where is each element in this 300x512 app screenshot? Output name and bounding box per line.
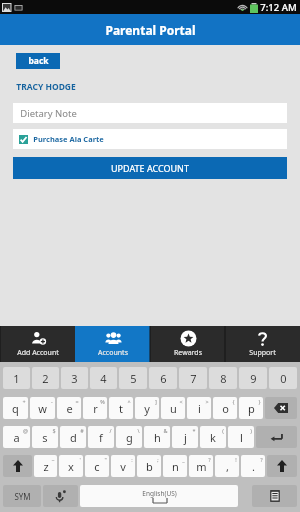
staticText: } (258, 398, 261, 405)
staticText: r (93, 401, 98, 416)
staticText: b (146, 459, 153, 474)
staticText: 1 (13, 371, 20, 386)
button[interactable]: 0 (269, 367, 297, 389)
staticText: TRACY HODGE (16, 81, 76, 93)
button[interactable]: . (241, 455, 265, 477)
button[interactable]: Backspace (265, 397, 297, 419)
button[interactable]: b (137, 455, 161, 477)
staticText: 6 (160, 371, 167, 386)
button[interactable]: y (135, 397, 159, 419)
staticText: _ (182, 456, 185, 463)
button[interactable]: t (109, 397, 133, 419)
button[interactable]: e (57, 397, 81, 419)
button[interactable]: s (32, 426, 58, 448)
staticText: y (144, 401, 150, 416)
staticText: u (170, 401, 177, 416)
button[interactable]: 9 (239, 367, 267, 389)
staticText: SYM (14, 491, 31, 502)
button[interactable]: h (144, 426, 170, 448)
staticText: 9 (250, 371, 257, 386)
staticText: # (80, 427, 84, 434)
button[interactable]: v (111, 455, 135, 477)
staticText: f (99, 430, 103, 445)
button[interactable]: UPDATE ACCOUNT (13, 157, 287, 179)
button[interactable]: Shift (3, 455, 32, 477)
button[interactable]: Add Account (0, 326, 75, 362)
button[interactable]: z (34, 455, 57, 477)
button[interactable]: English(US) (80, 485, 238, 507)
button[interactable]: d (60, 426, 86, 448)
staticText: @ (23, 427, 28, 434)
button[interactable]: u (161, 397, 185, 419)
staticText: , (226, 459, 229, 474)
button[interactable]: Accounts (75, 326, 150, 362)
staticText: back (28, 55, 49, 67)
button[interactable]: x (59, 455, 83, 477)
button[interactable]: k (200, 426, 226, 448)
button[interactable]: , (215, 455, 239, 477)
staticText: l (240, 430, 243, 445)
staticText: ? (260, 456, 263, 463)
staticText: c (94, 459, 100, 474)
staticText: m (196, 459, 207, 474)
button[interactable]: 2 (32, 367, 59, 389)
button[interactable]: Support (225, 326, 300, 362)
staticText: j (184, 430, 187, 445)
button[interactable]: n (163, 455, 187, 477)
staticText: w (38, 401, 47, 416)
staticText: 2 (42, 371, 49, 386)
button[interactable]: Purchase Ala Carte (13, 129, 287, 149)
staticText: Purchase Ala Carte (33, 134, 104, 144)
staticText: Parental Portal (105, 22, 196, 38)
button[interactable]: Clipboard (252, 485, 297, 507)
button[interactable]: m (189, 455, 213, 477)
staticText: 7 (190, 371, 197, 386)
staticText: Accounts (98, 348, 128, 358)
button[interactable]: 1 (3, 367, 30, 389)
staticText: p (248, 401, 255, 416)
staticText: ~ (51, 456, 55, 463)
staticText: 8 (220, 371, 227, 386)
button[interactable]: Rewards (150, 326, 225, 362)
button[interactable]: l (228, 426, 254, 448)
button[interactable]: 3 (61, 367, 88, 389)
staticText: : (131, 456, 133, 463)
button[interactable]: a (3, 426, 30, 448)
staticText: k (210, 430, 216, 445)
button[interactable]: 4 (90, 367, 117, 389)
button[interactable]: 8 (209, 367, 237, 389)
staticText: x (68, 459, 74, 474)
button[interactable]: 7 (179, 367, 207, 389)
button[interactable]: j (172, 426, 198, 448)
button[interactable]: w (30, 397, 55, 419)
button[interactable]: 6 (149, 367, 177, 389)
button[interactable]: q (3, 397, 28, 419)
button[interactable]: SYM (3, 485, 41, 507)
staticText: & (163, 427, 168, 434)
button[interactable]: g (116, 426, 142, 448)
staticText: ' (79, 456, 81, 463)
staticText: 0 (280, 371, 287, 386)
button[interactable]: f (88, 426, 114, 448)
button[interactable]: back (16, 53, 60, 69)
button[interactable]: o (213, 397, 237, 419)
button[interactable]: c (85, 455, 109, 477)
staticText: . (252, 459, 255, 474)
staticText: d (70, 430, 77, 445)
staticText: 3 (71, 371, 78, 386)
button[interactable]: Voice input (43, 485, 78, 507)
button[interactable]: Enter (256, 426, 297, 448)
staticText: English(US) (142, 489, 177, 498)
staticText: t (119, 401, 123, 416)
button[interactable]: i (187, 397, 211, 419)
staticText: 7:12 AM (260, 1, 297, 14)
button[interactable]: 5 (119, 367, 147, 389)
button[interactable]: p (239, 397, 263, 419)
staticText: ! (235, 456, 237, 463)
button[interactable]: Shift (267, 455, 297, 477)
button[interactable]: r (83, 397, 107, 419)
staticText: 5 (130, 371, 137, 386)
staticText: / (109, 427, 112, 434)
staticText: ) (250, 427, 252, 434)
button[interactable]: Dietary Note (13, 103, 287, 123)
